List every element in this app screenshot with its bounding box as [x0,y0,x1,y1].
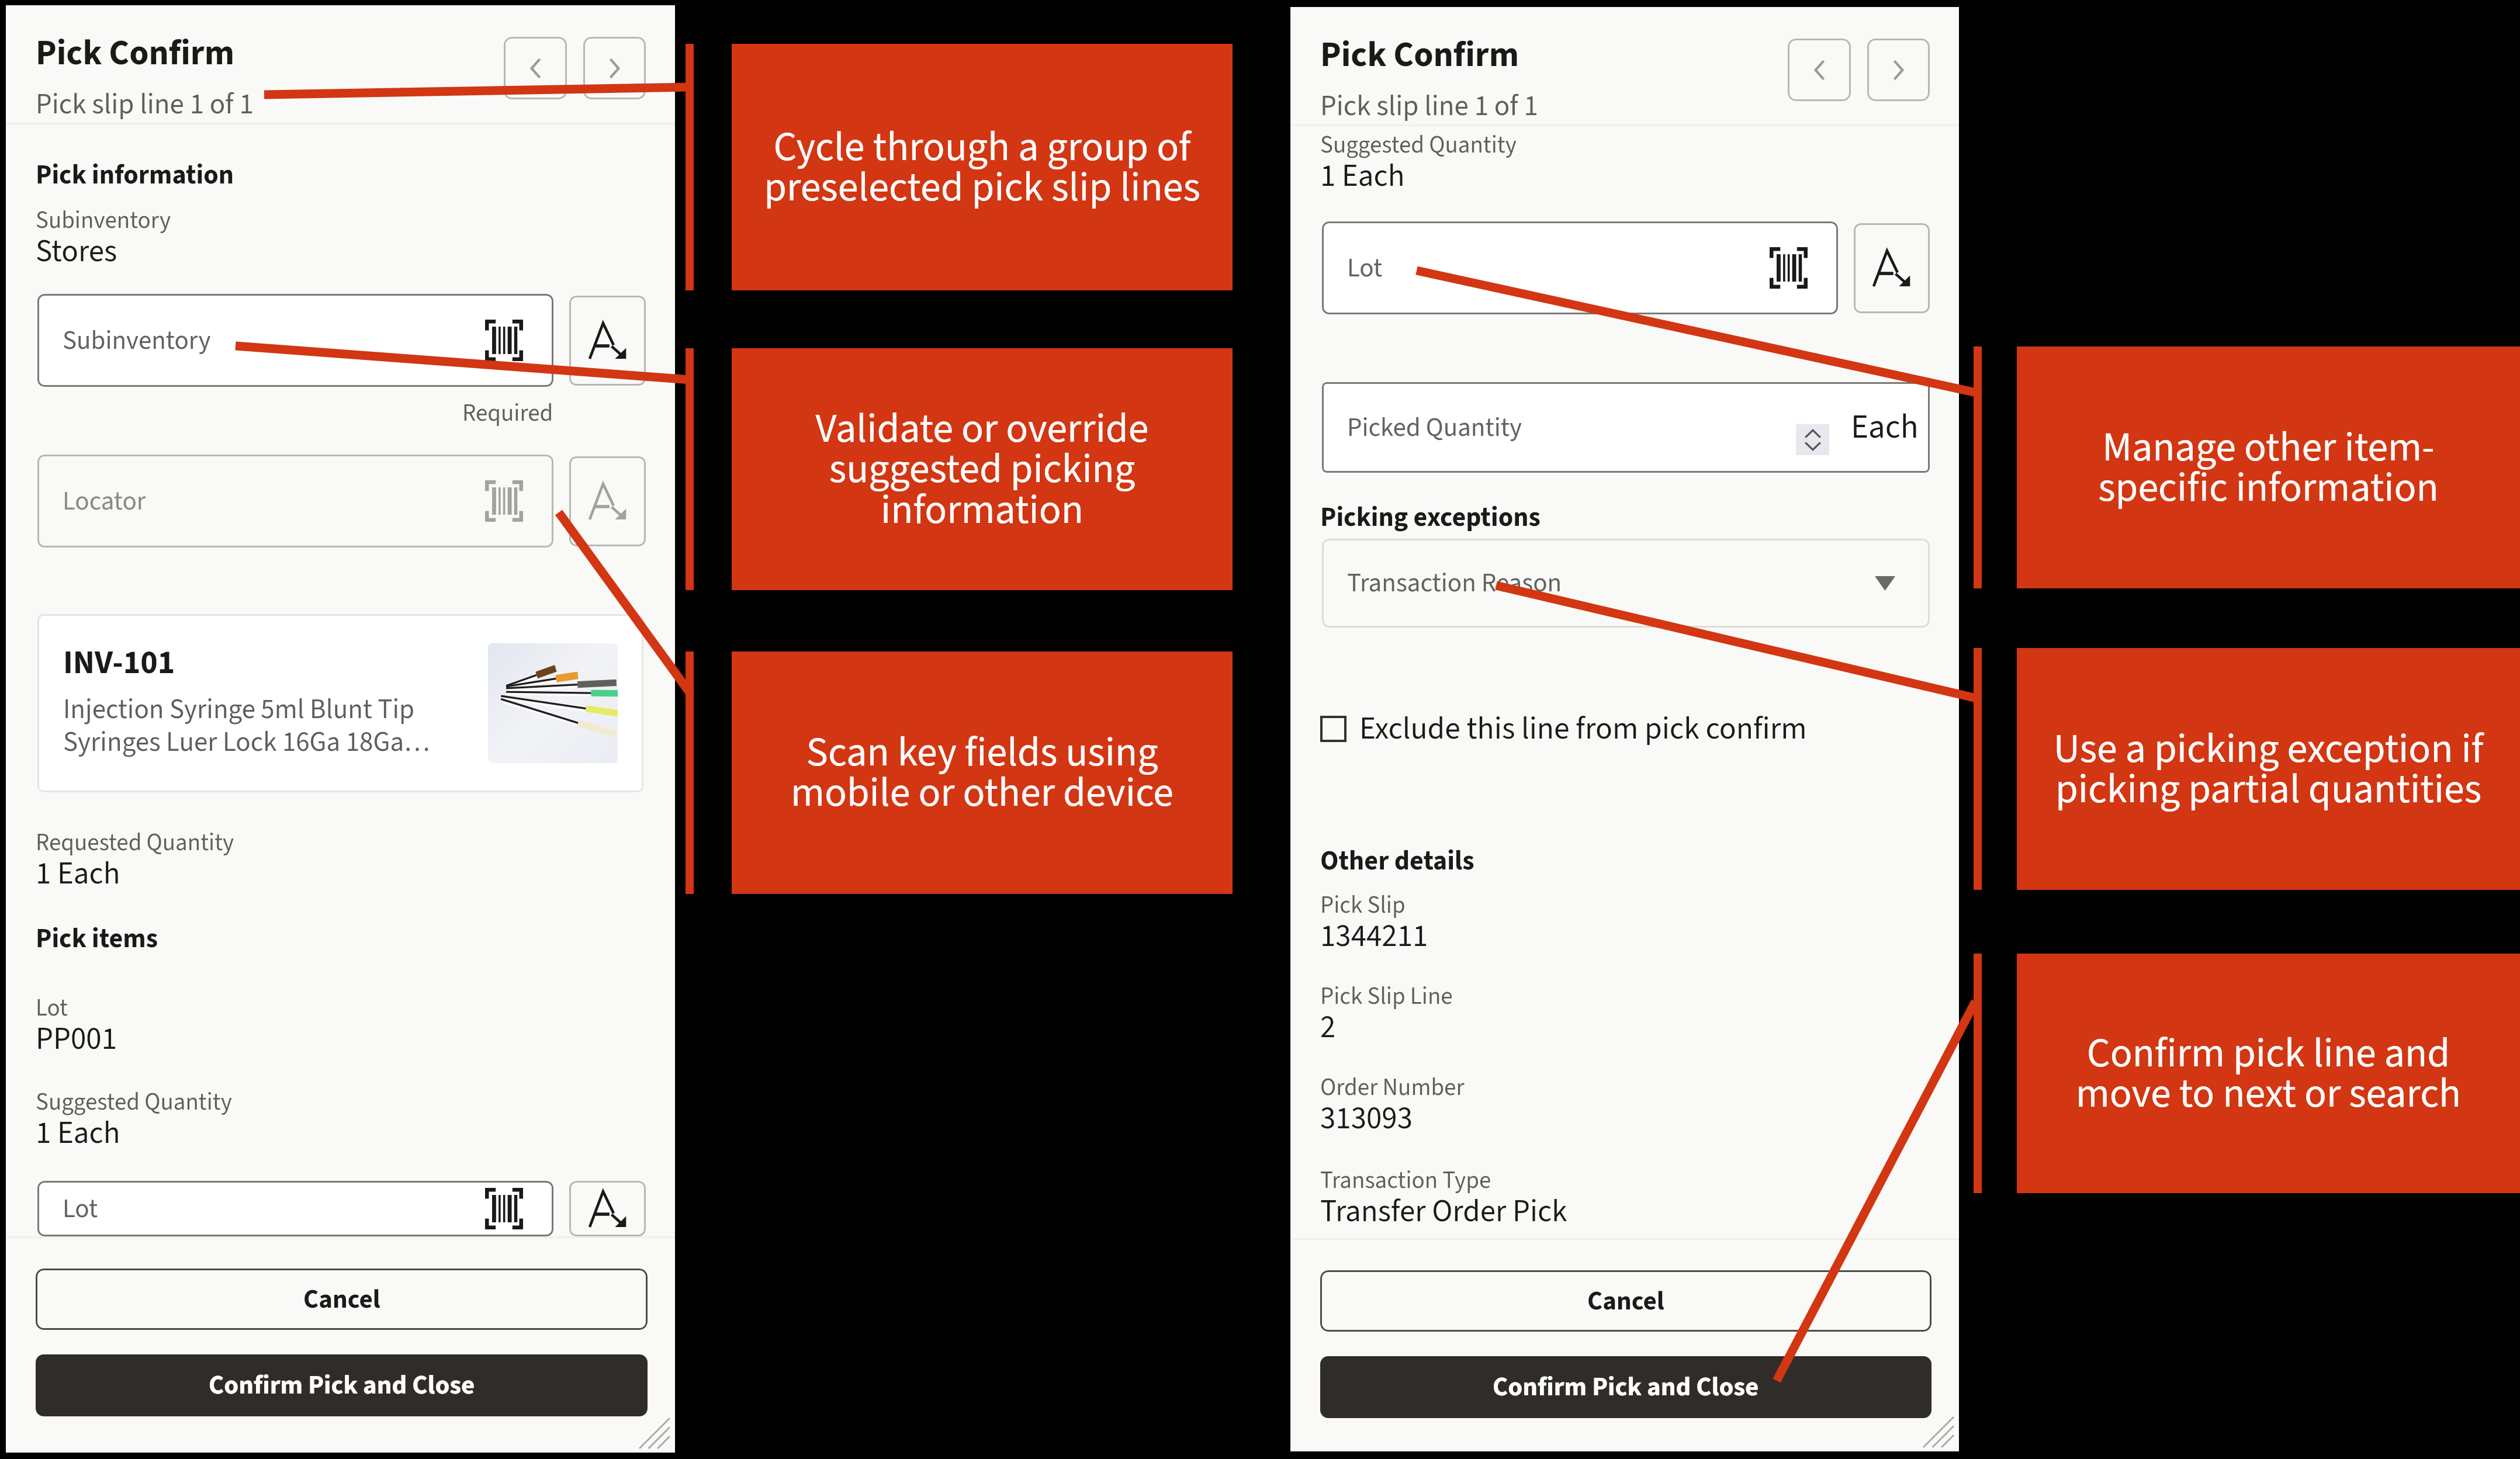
staticText: 2 [1320,1006,1336,1049]
staticText: Pick Slip Line [1320,979,1453,1013]
staticText: Manage other item- specific information [2017,418,2520,517]
staticText: Confirm pick line and move to next or se… [2017,1024,2520,1123]
button[interactable]: Subinventory [37,294,553,387]
staticText: Each [1851,404,1919,451]
staticText: Picking exceptions [1320,498,1541,537]
staticText: Pick items [36,920,158,958]
button[interactable]: Validate or override suggested picking i… [732,348,1233,590]
staticText: Transaction Reason [1347,564,1562,602]
button[interactable]: Use a picking exception if picking parti… [2017,648,2520,890]
staticText: Injection Syringe 5ml Blunt Tip Syringes… [63,690,430,761]
staticText: 313093 [1320,1097,1413,1141]
staticText: Other details [1320,842,1474,881]
button[interactable]: Locator [37,455,553,547]
staticText: 1 Each [36,852,120,896]
staticText: Validate or override suggested picking i… [732,400,1233,539]
staticText: Transfer Order Pick [1320,1190,1567,1231]
button[interactable]: Transaction Reason [1322,539,1930,628]
button[interactable]: Scan Locator [569,456,646,546]
button[interactable]: Confirm pick line and move to next or se… [2017,954,2520,1193]
staticText: Cycle through a group of preselected pic… [732,118,1233,217]
button[interactable]: Cancel [1320,1270,1931,1332]
button[interactable]: Scan Subinventory [569,296,646,386]
staticText: Cancel [1587,1283,1664,1320]
button[interactable]: Next pick slip line [1867,39,1930,101]
staticText: Locator [63,483,146,520]
staticText: Stores [36,230,117,273]
button[interactable]: INV-101 [37,614,643,792]
staticText: Picked Quantity [1347,409,1522,446]
button[interactable]: Confirm Pick and Close [1320,1356,1931,1418]
staticText: Pick slip line 1 of 1 [1320,86,1538,126]
staticText: Required [462,396,553,430]
staticText: Suggested Quantity [36,1085,232,1119]
staticText: Exclude this line from pick confirm [1359,706,1807,751]
button[interactable]: Lot [1322,221,1838,314]
staticText: Pick Confirm [36,29,235,78]
staticText: Subinventory [63,322,211,359]
button[interactable]: Lot [37,1181,553,1236]
staticText: Pick slip line 1 of 1 [36,84,254,124]
staticText: Transaction Type [1320,1163,1491,1197]
staticText: Lot [1347,249,1383,287]
staticText: Scan key fields using mobile or other de… [732,723,1233,822]
button[interactable]: Cycle through a group of preselected pic… [732,44,1233,290]
staticText: 1344211 [1320,914,1428,958]
staticText: Confirm Pick and Close [1493,1368,1759,1406]
staticText: Pick Slip [1320,888,1406,922]
staticText: Suggested Quantity [1320,128,1517,162]
staticText: Lot [63,1190,98,1228]
staticText: Lot [36,991,68,1025]
staticText: Confirm Pick and Close [209,1367,475,1404]
button[interactable]: Next pick slip line [583,37,646,99]
staticText: 1 Each [1320,154,1405,198]
button[interactable]: Scan key fields using mobile or other de… [732,651,1233,894]
staticText: Requested Quantity [36,826,234,860]
button[interactable]: Cancel [36,1269,648,1330]
button[interactable]: Previous pick slip line [504,37,567,99]
staticText: Use a picking exception if picking parti… [2017,720,2520,819]
button[interactable]: Scan Lot [1854,223,1930,313]
staticText: 1 Each [36,1111,120,1155]
staticText: Order Number [1320,1070,1465,1104]
button[interactable]: Previous pick slip line [1788,39,1851,101]
staticText: Cancel [303,1281,380,1318]
staticText: PP001 [36,1017,117,1061]
button[interactable]: Scan Lot [569,1181,646,1236]
button[interactable]: Exclude this line from pick confirm [1320,706,1807,751]
staticText: Pick Confirm [1320,30,1519,80]
button[interactable]: Picked Quantity [1322,382,1930,473]
staticText: Pick information [36,156,234,195]
button[interactable]: Manage other item- specific information [2017,346,2520,588]
button[interactable]: Confirm Pick and Close [36,1354,648,1416]
staticText: INV-101 [63,640,175,687]
staticText: Subinventory [36,203,171,237]
